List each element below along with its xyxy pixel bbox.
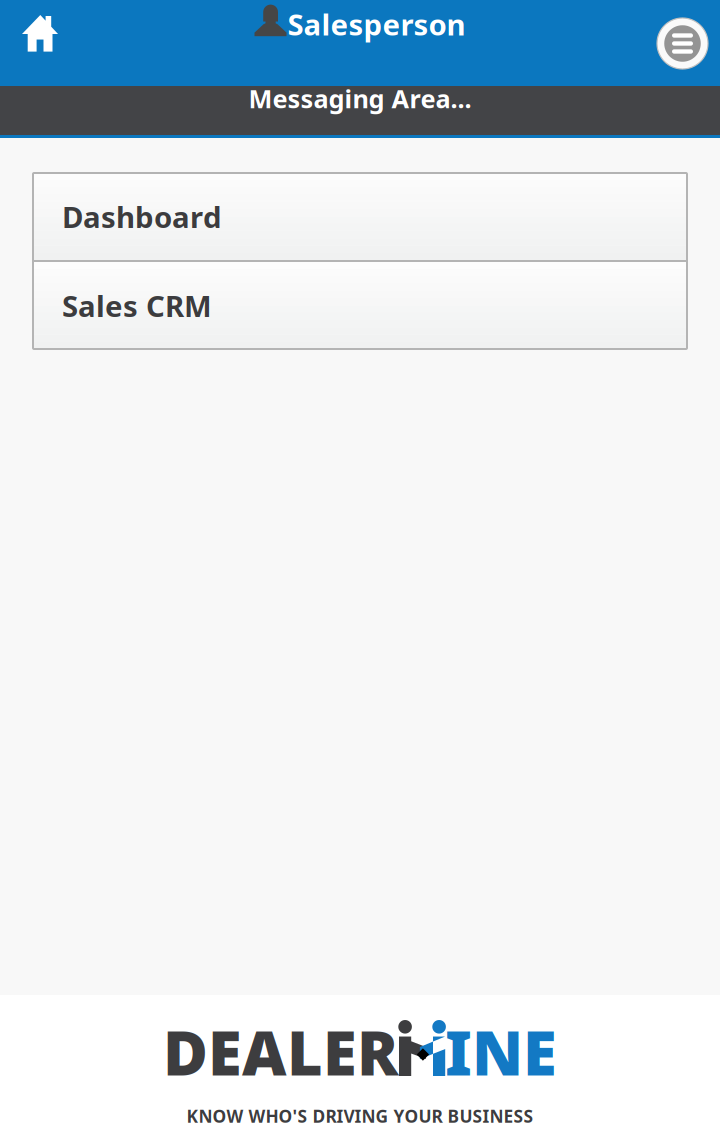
button[interactable]: Dashboard	[33, 173, 687, 260]
staticText: Sales CRM	[62, 286, 212, 325]
button[interactable]: Sales CRM	[33, 262, 687, 349]
staticText: Dashboard	[62, 197, 222, 236]
staticText: Salesperson	[287, 4, 465, 43]
button[interactable]: Home	[0, 0, 58, 86]
staticText: Messaging Area...	[248, 82, 471, 115]
staticText: INE	[445, 1011, 557, 1092]
staticText: KNOW WHO'S DRIVING YOUR BUSINESS	[186, 1104, 533, 1127]
button[interactable]: Menu	[657, 0, 720, 86]
staticText: DEALER	[163, 1011, 399, 1092]
